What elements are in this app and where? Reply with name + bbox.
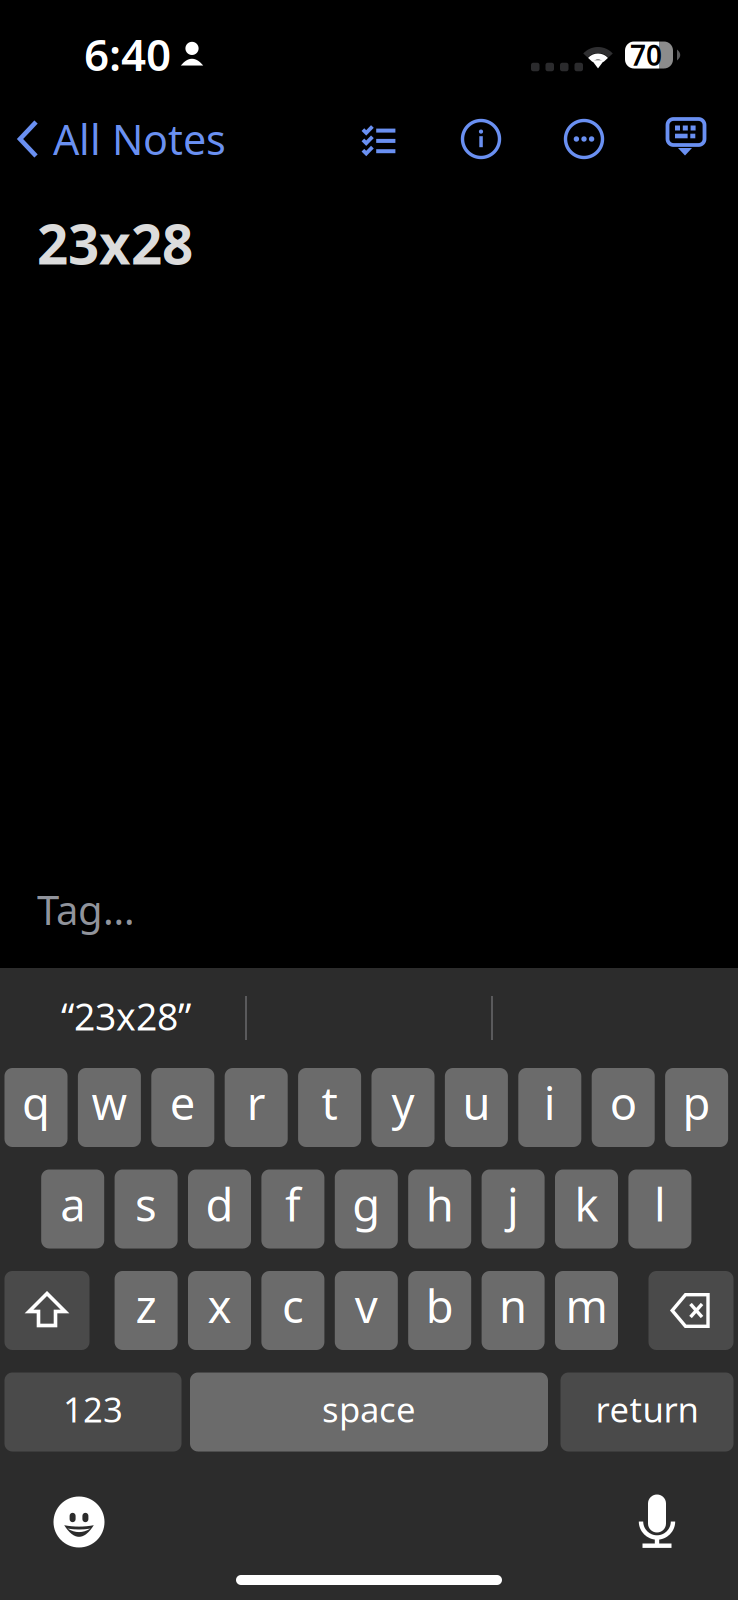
button[interactable]: p <box>665 1068 728 1147</box>
button[interactable]: u <box>445 1068 508 1147</box>
button[interactable]: Shift <box>4 1271 89 1350</box>
staticText: i <box>544 1072 556 1133</box>
staticText: d <box>205 1174 233 1234</box>
staticText: v <box>355 1275 378 1336</box>
button[interactable]: g <box>335 1169 398 1248</box>
button[interactable]: x <box>188 1271 251 1350</box>
staticText: 70 <box>630 36 662 74</box>
staticText: All Notes <box>53 112 226 166</box>
staticText: g <box>352 1174 380 1234</box>
staticText: q <box>22 1072 50 1133</box>
staticText: c <box>282 1275 304 1336</box>
staticText: e <box>170 1072 196 1133</box>
staticText: 6:40 <box>84 25 171 83</box>
staticText: 123 <box>63 1386 123 1432</box>
button[interactable]: k <box>555 1169 618 1248</box>
staticText: p <box>683 1072 711 1133</box>
button[interactable]: s <box>115 1169 178 1248</box>
button[interactable]: e <box>151 1068 214 1147</box>
button[interactable]: All Notes <box>0 103 240 175</box>
button[interactable]: More options <box>553 108 615 170</box>
staticText: u <box>462 1072 490 1133</box>
staticText: r <box>247 1072 266 1133</box>
button[interactable]: 123 <box>4 1372 181 1451</box>
staticText: a <box>60 1174 85 1234</box>
staticText: f <box>285 1174 301 1234</box>
button[interactable]: Hide keyboard <box>655 108 717 170</box>
button[interactable]: z <box>115 1271 178 1350</box>
staticText: k <box>574 1174 598 1234</box>
staticText: t <box>322 1072 338 1133</box>
button[interactable]: Delete <box>648 1271 733 1350</box>
button[interactable]: l <box>628 1169 691 1248</box>
button[interactable]: h <box>408 1169 471 1248</box>
button[interactable]: “23x28” <box>4 984 248 1048</box>
button[interactable]: return <box>560 1372 733 1451</box>
staticText: s <box>135 1174 157 1234</box>
button[interactable]: n <box>482 1271 545 1350</box>
button[interactable]: f <box>261 1169 324 1248</box>
staticText: h <box>426 1174 454 1234</box>
button[interactable]: w <box>78 1068 141 1147</box>
staticText: space <box>322 1386 416 1432</box>
staticText: y <box>391 1072 414 1133</box>
button[interactable]: y <box>371 1068 434 1147</box>
staticText: 23x28 <box>37 207 193 280</box>
staticText: x <box>207 1275 231 1336</box>
staticText: Tag… <box>37 883 135 936</box>
button[interactable]: q <box>4 1068 67 1147</box>
button[interactable]: j <box>482 1169 545 1248</box>
staticText: l <box>654 1174 666 1234</box>
button[interactable]: r <box>225 1068 288 1147</box>
button[interactable]: a <box>41 1169 104 1248</box>
button[interactable]: Dictate <box>629 1494 685 1550</box>
staticText: j <box>507 1174 519 1234</box>
button[interactable]: d <box>188 1169 251 1248</box>
staticText: “23x28” <box>61 991 191 1041</box>
button[interactable]: space <box>190 1372 548 1451</box>
button[interactable]: t <box>298 1068 361 1147</box>
button[interactable]: c <box>261 1271 324 1350</box>
staticText: m <box>565 1275 607 1336</box>
button[interactable]: Note details <box>450 108 512 170</box>
staticText: o <box>610 1072 637 1133</box>
staticText: n <box>499 1275 527 1336</box>
button[interactable]: o <box>592 1068 655 1147</box>
button[interactable]: b <box>408 1271 471 1350</box>
staticText: return <box>595 1386 698 1432</box>
staticText: z <box>136 1275 157 1336</box>
button[interactable]: m <box>555 1271 618 1350</box>
button[interactable]: i <box>518 1068 581 1147</box>
button[interactable]: v <box>335 1271 398 1350</box>
staticText: b <box>426 1275 454 1336</box>
button[interactable]: Checklist <box>348 108 410 170</box>
button[interactable]: Emoji <box>51 1494 107 1550</box>
staticText: w <box>91 1072 127 1133</box>
